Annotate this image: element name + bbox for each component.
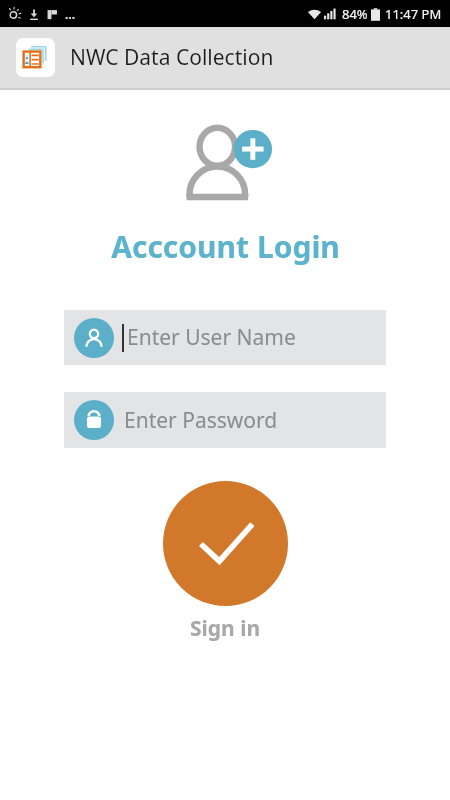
button[interactable]: Enter Password [64, 392, 386, 448]
button[interactable]: App icon [16, 38, 55, 77]
staticText: Acccount Login [111, 226, 340, 267]
staticText: ... [65, 6, 76, 22]
button[interactable]: Enter User Name [64, 310, 386, 365]
staticText: Enter User Name [127, 323, 296, 352]
staticText: 11:47 PM [385, 5, 442, 23]
button[interactable]: Sign in [139, 481, 312, 643]
staticText: NWC Data Collection [70, 43, 274, 72]
staticText: Enter Password [124, 406, 278, 435]
staticText: Sign in [190, 614, 261, 643]
staticText: 84% [342, 5, 368, 23]
